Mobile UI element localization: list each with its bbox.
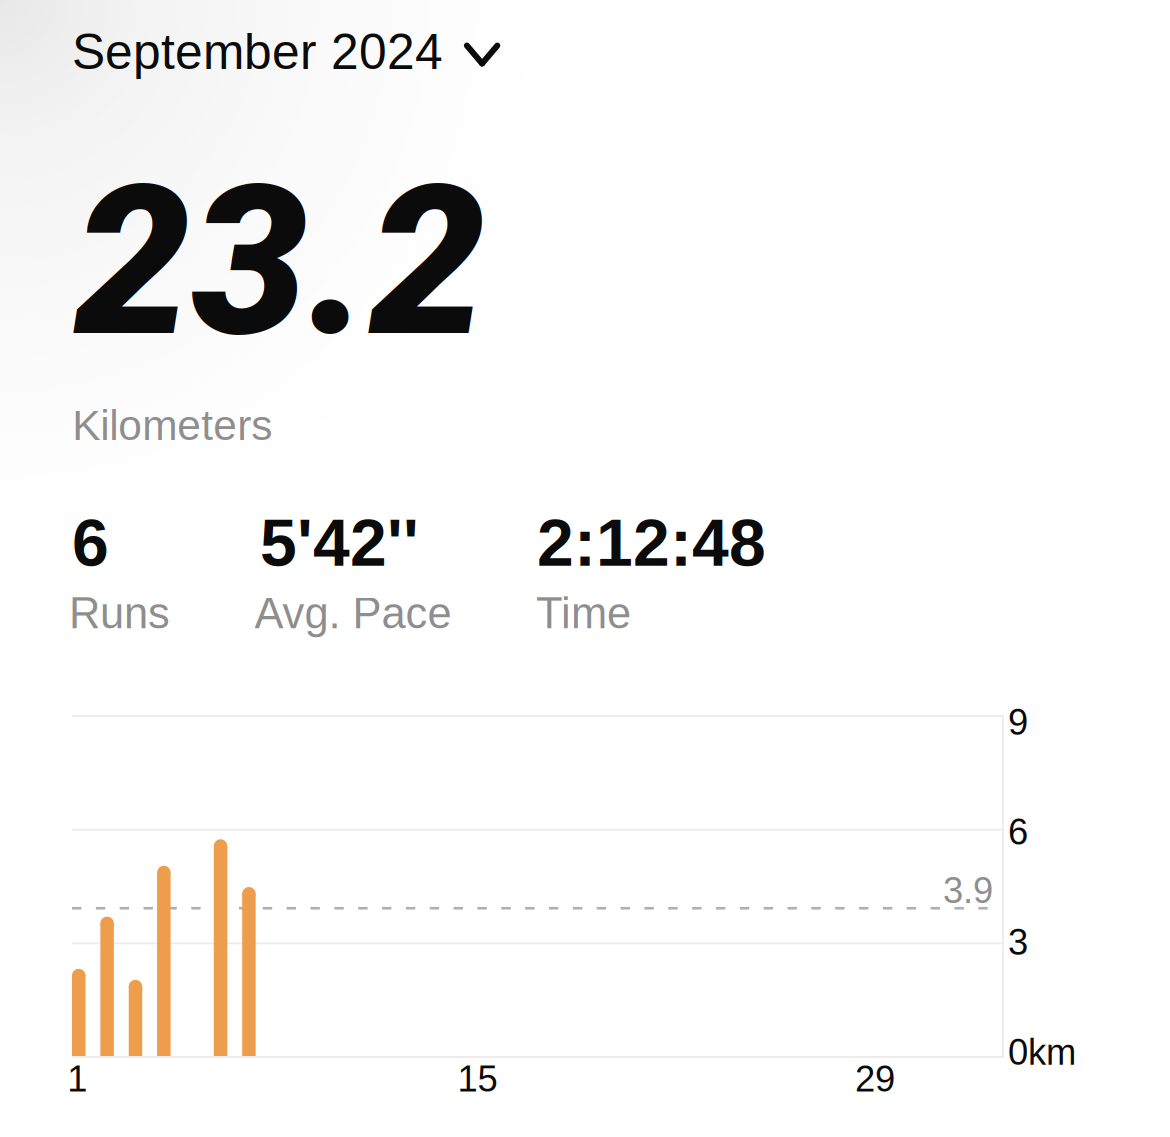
staticText: 29 (855, 1058, 895, 1099)
staticText: Runs (69, 589, 170, 638)
staticText: September 2024 (72, 24, 443, 79)
button[interactable]: September 2024 (71, 10, 509, 82)
staticText: 6 (72, 506, 109, 580)
staticText: 15 (458, 1058, 498, 1099)
staticText: 2:12:48 (537, 506, 766, 580)
staticText: Kilometers (72, 401, 272, 449)
staticText: 0km (1008, 1032, 1076, 1072)
staticText: Avg. Pace (254, 589, 451, 638)
staticText: Time (536, 589, 631, 638)
staticText: 3.9 (943, 870, 993, 911)
staticText: 3 (1008, 922, 1028, 962)
staticText: 1 (67, 1058, 87, 1099)
staticText: 6 (1008, 811, 1028, 852)
staticText: 5'42'' (260, 506, 419, 580)
staticText: 23.2 (74, 140, 486, 384)
staticText: 9 (1008, 702, 1028, 743)
